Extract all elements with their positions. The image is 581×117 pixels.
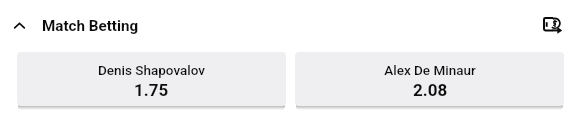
button[interactable]: Match Betting (0, 11, 147, 41)
button[interactable]: Cash out (536, 9, 570, 43)
button[interactable]: Alex De Minaur (295, 52, 564, 106)
button[interactable]: Denis Shapovalov (17, 52, 286, 106)
staticText: Match Betting (42, 17, 139, 35)
staticText: Denis Shapovalov (98, 62, 205, 78)
staticText: Alex De Minaur (384, 62, 476, 78)
staticText: 2.08 (413, 80, 448, 100)
staticText: 1.75 (134, 80, 169, 100)
